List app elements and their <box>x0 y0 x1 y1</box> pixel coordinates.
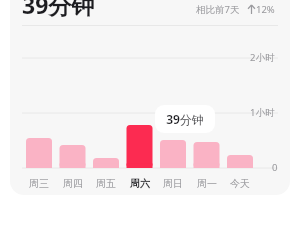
staticText: 1小时 <box>250 106 275 119</box>
staticText: 12% <box>256 3 275 16</box>
button[interactable]: 周四 <box>58 176 88 190</box>
button[interactable]: 周日 <box>158 176 188 190</box>
button[interactable]: 周六 <box>125 176 155 190</box>
staticText: 相比前7天 <box>196 3 240 16</box>
staticText: 周五 <box>96 177 116 190</box>
button[interactable] <box>10 0 290 195</box>
staticText: 周六 <box>130 177 150 190</box>
button[interactable]: 周一 <box>192 176 222 190</box>
staticText: 39分钟 <box>166 111 204 127</box>
staticText: 39分钟 <box>22 0 95 20</box>
staticText: 周一 <box>197 177 217 190</box>
button[interactable]: 今天 <box>225 176 255 190</box>
button[interactable]: 39分钟 <box>155 105 215 133</box>
staticText: 周三 <box>29 177 49 190</box>
staticText: 今天 <box>230 177 250 190</box>
staticText: 2小时 <box>250 51 275 64</box>
button[interactable]: 39分钟 <box>22 0 95 20</box>
staticText: 0 <box>272 161 278 174</box>
button[interactable]: 周五 <box>91 176 121 190</box>
staticText: 周四 <box>63 177 83 190</box>
button[interactable]: 周三 <box>24 176 54 190</box>
staticText: 周日 <box>163 177 183 190</box>
other: Increase <box>248 5 255 14</box>
